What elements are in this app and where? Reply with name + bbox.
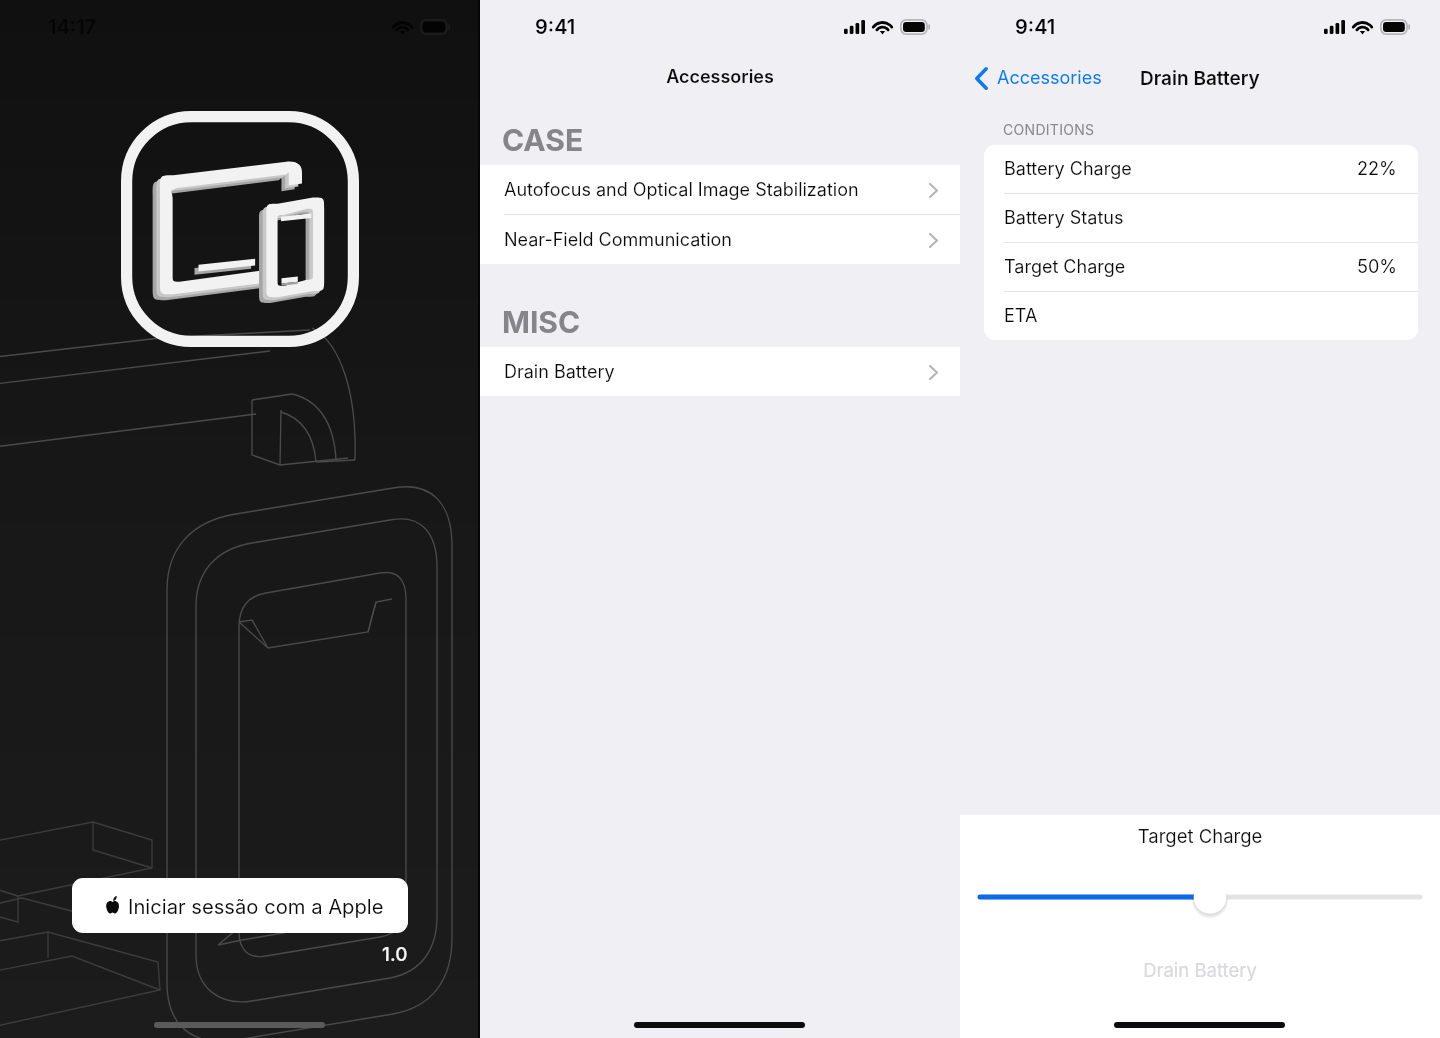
staticText: CASE bbox=[502, 122, 584, 158]
staticText: 14:17 bbox=[48, 15, 97, 39]
button[interactable]: Autofocus and Optical Image Stabilizatio… bbox=[480, 165, 960, 214]
button[interactable]: Battery Status bbox=[984, 194, 1418, 242]
button[interactable]: Battery Charge bbox=[984, 145, 1418, 193]
button[interactable]: Near-Field Communication bbox=[480, 215, 960, 264]
staticText: Target Charge bbox=[960, 825, 1440, 847]
staticText: 9:41 bbox=[1015, 15, 1056, 39]
button[interactable]: Back to Accessories bbox=[960, 62, 1108, 94]
staticText: 1.0 bbox=[382, 943, 408, 966]
staticText: Drain Battery bbox=[960, 959, 1440, 981]
staticText: Battery Status bbox=[1004, 207, 1124, 229]
staticText: CONDITIONS bbox=[1003, 121, 1095, 138]
staticText: Accessories bbox=[480, 66, 960, 88]
button[interactable]: Iniciar sessão com a Apple bbox=[72, 878, 408, 933]
staticText: 50% bbox=[1357, 256, 1397, 278]
button[interactable]: Target charge slider, 52 percent bbox=[960, 875, 1440, 919]
staticText: Autofocus and Optical Image Stabilizatio… bbox=[504, 179, 859, 201]
staticText: Iniciar sessão com a Apple bbox=[128, 894, 384, 918]
button[interactable]: Drain Battery bbox=[960, 943, 1440, 995]
button[interactable]: Drain Battery bbox=[480, 347, 960, 396]
staticText: 22% bbox=[1357, 158, 1397, 180]
staticText: Drain Battery bbox=[504, 361, 615, 383]
button[interactable]: Target Charge bbox=[984, 243, 1418, 291]
staticText: 9:41 bbox=[535, 15, 576, 39]
staticText: ETA bbox=[1004, 305, 1038, 327]
staticText: MISC bbox=[502, 304, 581, 340]
button[interactable]: ETA bbox=[984, 292, 1418, 340]
staticText: Drain Battery bbox=[1140, 67, 1260, 90]
staticText: Target Charge bbox=[1004, 256, 1126, 278]
staticText: Battery Charge bbox=[1004, 158, 1132, 180]
staticText: Near-Field Communication bbox=[504, 229, 732, 251]
staticText: Accessories bbox=[997, 67, 1102, 89]
